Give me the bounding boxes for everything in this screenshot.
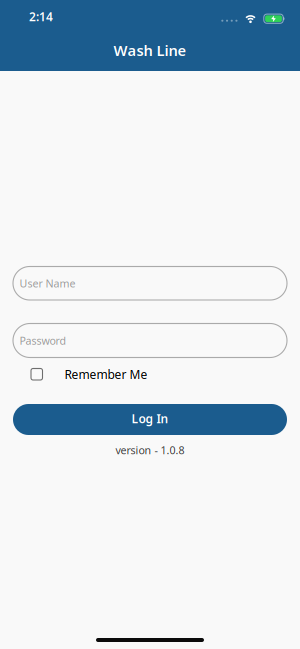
- staticText: Remember Me: [64, 366, 147, 382]
- staticText: version - 1.0.8: [115, 443, 184, 457]
- staticText: Log In: [131, 410, 168, 426]
- staticText: User Name: [19, 276, 75, 290]
- staticText: 2:14: [29, 9, 53, 25]
- button[interactable]: Remember Me: [31, 366, 147, 382]
- staticText: Password: [19, 333, 66, 348]
- button[interactable]: Password: [13, 323, 287, 357]
- button[interactable]: Log In: [13, 404, 287, 435]
- button[interactable]: User Name: [13, 266, 287, 300]
- staticText: Wash Line: [113, 40, 186, 60]
